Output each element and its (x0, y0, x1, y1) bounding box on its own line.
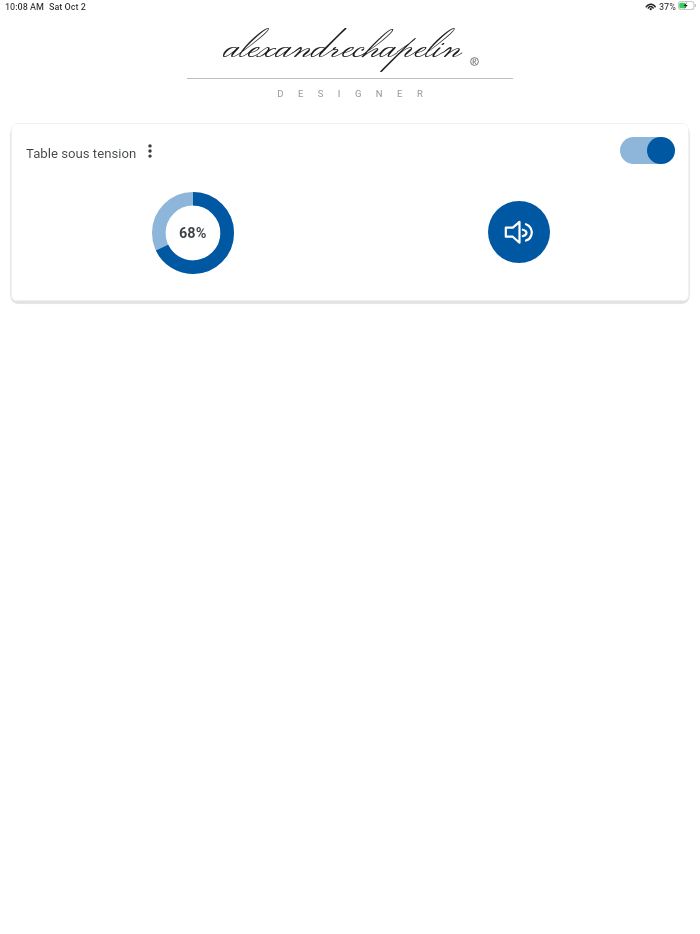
button[interactable]: Table sous tension (26, 139, 137, 167)
staticText: 37% (659, 2, 676, 13)
staticText: alexandrechapelin (225, 8, 463, 80)
staticText: alexandrechapelin (225, 8, 463, 80)
staticText: 10:08 AM (5, 2, 44, 13)
button[interactable]: Volume (488, 201, 550, 263)
button[interactable]: More options (135, 136, 165, 166)
staticText: Table sous tension (26, 146, 137, 161)
staticText: Sat Oct 2 (49, 2, 86, 13)
staticText: D E S I G N E R (277, 88, 429, 99)
staticText: 68% (179, 225, 207, 242)
button[interactable]: Power, on (611, 128, 683, 172)
